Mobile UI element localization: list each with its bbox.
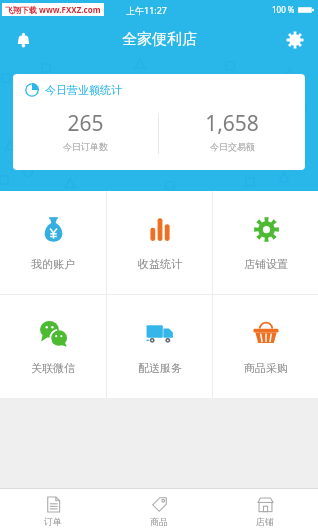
staticText: 商品采购 <box>244 361 288 375</box>
staticText: 265 <box>67 109 104 138</box>
button[interactable]: Notifications <box>6 23 40 57</box>
staticText: 店铺设置 <box>244 257 288 271</box>
button[interactable]: 店铺 <box>212 489 318 532</box>
button[interactable]: Settings <box>278 23 312 57</box>
button[interactable]: 订单 <box>0 489 106 532</box>
button[interactable]: 收益统计 <box>107 191 212 294</box>
button[interactable]: 店铺设置 <box>213 191 318 294</box>
staticText: 收益统计 <box>138 257 182 271</box>
button[interactable]: 关联微信 <box>0 295 106 398</box>
button[interactable]: 我的账户 <box>0 191 106 294</box>
staticText: 上午11:27 <box>126 4 168 16</box>
staticText: 1,658 <box>205 109 259 138</box>
staticText: 飞翔下载 www.FXXZ.com <box>5 4 101 15</box>
staticText: 订单 <box>44 516 62 527</box>
button[interactable]: 商品采购 <box>213 295 318 398</box>
button[interactable]: 配送服务 <box>107 295 212 398</box>
staticText: 全家便利店 <box>122 30 197 49</box>
button[interactable]: 商品 <box>106 489 212 532</box>
staticText: 配送服务 <box>138 361 182 375</box>
staticText: 今日订单数 <box>63 141 108 152</box>
staticText: 今日交易额 <box>210 141 255 152</box>
staticText: 100 % <box>272 4 295 15</box>
staticText: 商品 <box>150 516 168 527</box>
staticText: 我的账户 <box>31 257 75 271</box>
staticText: 店铺 <box>256 516 274 527</box>
staticText: 关联微信 <box>31 361 75 375</box>
staticText: 今日营业额统计 <box>45 83 122 97</box>
